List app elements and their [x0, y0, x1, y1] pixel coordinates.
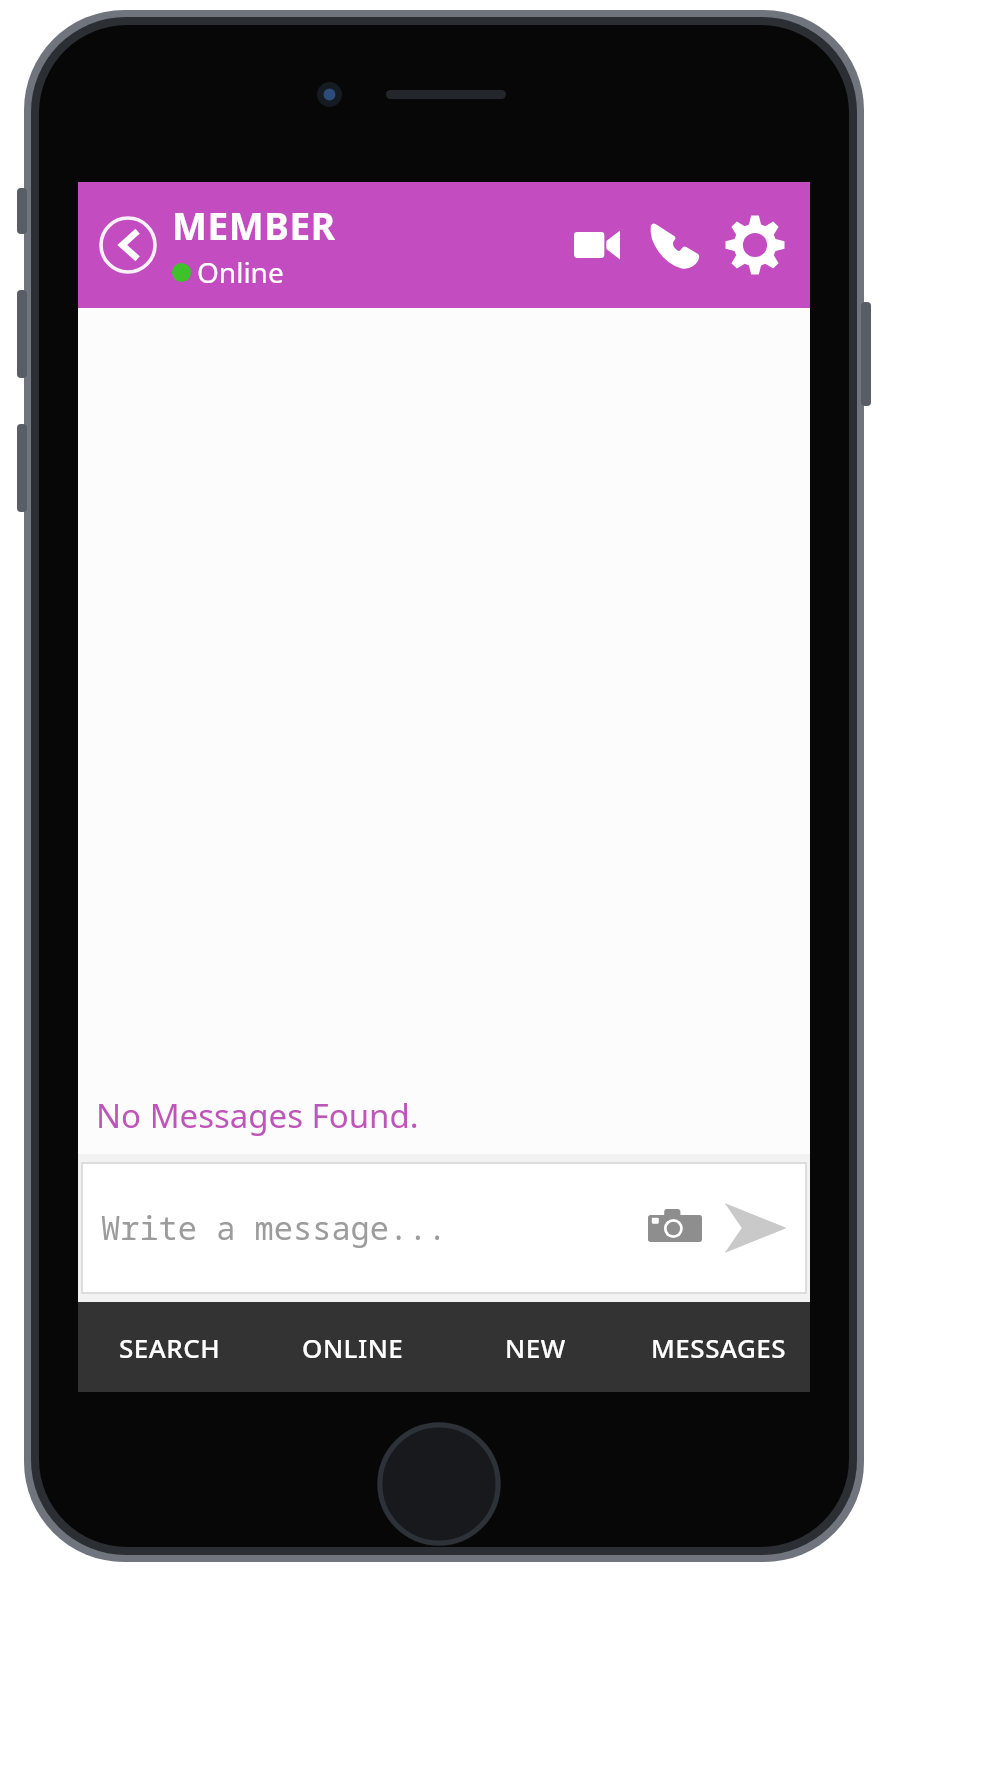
staticText: Write a message...	[101, 1206, 639, 1250]
button[interactable]: Call	[636, 206, 714, 284]
staticText: MEMBER	[172, 200, 336, 250]
button[interactable]: ONLINE	[261, 1302, 444, 1392]
staticText: SEARCH	[119, 1330, 221, 1365]
staticText: ONLINE	[302, 1330, 404, 1365]
button[interactable]: MESSAGES	[627, 1302, 810, 1392]
button[interactable]: SEARCH	[78, 1302, 261, 1392]
staticText: Online	[197, 253, 284, 291]
button[interactable]: NEW	[444, 1302, 627, 1392]
button[interactable]: Settings	[714, 204, 796, 286]
button[interactable]: Send	[717, 1190, 793, 1266]
button[interactable]: Back	[96, 213, 160, 277]
staticText: No Messages Found.	[96, 1093, 419, 1138]
button[interactable]: Attach photo	[639, 1192, 711, 1264]
button[interactable]: Write a message...	[81, 1162, 807, 1294]
button[interactable]: Video call	[558, 206, 636, 284]
staticText: MESSAGES	[651, 1330, 787, 1365]
staticText: NEW	[505, 1330, 566, 1365]
